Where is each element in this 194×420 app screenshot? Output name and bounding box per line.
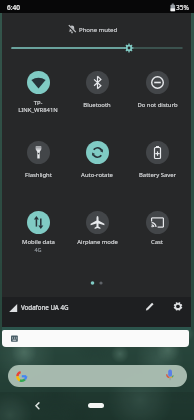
staticText: Auto-rotate bbox=[81, 171, 113, 179]
button[interactable] bbox=[142, 299, 158, 315]
button[interactable] bbox=[170, 299, 186, 315]
staticText: Cast bbox=[151, 238, 163, 246]
staticText: TP- LINK_WR841N bbox=[18, 99, 58, 114]
button[interactable] bbox=[146, 211, 169, 234]
staticText: Phone muted bbox=[79, 26, 118, 34]
staticText: 4G bbox=[34, 246, 42, 253]
button[interactable] bbox=[146, 141, 169, 164]
button[interactable] bbox=[86, 71, 109, 94]
button[interactable] bbox=[29, 397, 46, 414]
staticText: Airplane mode bbox=[77, 238, 118, 246]
staticText: Flashlight bbox=[25, 171, 52, 179]
button[interactable] bbox=[8, 40, 186, 56]
staticText: Do not disturb bbox=[137, 101, 178, 109]
button[interactable] bbox=[27, 71, 50, 94]
button[interactable] bbox=[8, 365, 187, 387]
button[interactable] bbox=[27, 211, 50, 234]
button[interactable] bbox=[86, 141, 109, 164]
button[interactable] bbox=[86, 211, 109, 234]
staticText: Battery Saver bbox=[139, 171, 176, 179]
staticText: Vodafone UA 4G bbox=[21, 303, 69, 311]
staticText: Bluetooth bbox=[83, 101, 111, 109]
button[interactable] bbox=[88, 403, 104, 408]
staticText: 6:40 bbox=[7, 3, 20, 12]
staticText: 35% bbox=[176, 3, 189, 12]
staticText: Mobile data bbox=[22, 238, 55, 246]
button[interactable] bbox=[27, 141, 50, 164]
button[interactable] bbox=[146, 71, 169, 94]
button[interactable] bbox=[2, 330, 189, 347]
